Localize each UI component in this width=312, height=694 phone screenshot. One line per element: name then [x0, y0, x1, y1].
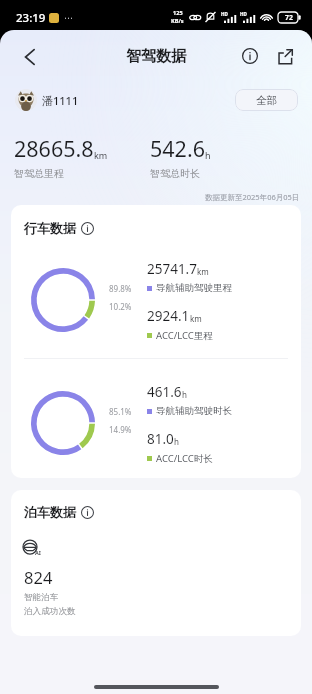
button[interactable]: Info	[80, 505, 95, 520]
staticText: 数据更新至2025年06月05日	[205, 192, 300, 202]
staticText: 智能泊车	[24, 592, 59, 603]
staticText: 89.8%	[109, 283, 132, 294]
button[interactable]: Info	[80, 221, 95, 236]
staticText: km	[197, 266, 209, 277]
staticText: 潘1111	[42, 93, 79, 108]
staticText: 泊车数据	[24, 504, 76, 520]
staticText: h	[174, 436, 179, 447]
staticText: ACC/LCC里程	[156, 329, 213, 342]
staticText: 461.6	[147, 383, 182, 401]
button[interactable]: Share	[270, 41, 300, 71]
button[interactable]: 潘1111	[15, 89, 79, 111]
staticText: km	[94, 149, 108, 161]
staticText: 智驾数据	[126, 47, 186, 66]
staticText: AI	[35, 549, 41, 556]
staticText: 81.0	[147, 430, 174, 448]
staticText: 125	[173, 9, 183, 17]
staticText: 导航辅助驾驶里程	[156, 282, 232, 294]
staticText: 542.6	[150, 134, 205, 163]
staticText: 85.1%	[109, 406, 132, 417]
staticText: 28665.8	[14, 134, 94, 163]
staticText: 导航辅助驾驶时长	[156, 405, 232, 417]
button[interactable]: Back	[13, 40, 46, 73]
staticText: 智驾总时长	[150, 167, 200, 180]
staticText: 10.2%	[109, 301, 132, 312]
staticText: 智驾总里程	[14, 167, 64, 180]
staticText: 行车数据	[24, 220, 76, 236]
staticText: ACC/LCC时长	[156, 452, 213, 465]
staticText: 72	[285, 13, 293, 22]
staticText: 泊入成功次数	[24, 606, 76, 617]
staticText: 全部	[256, 94, 277, 107]
staticText: 2924.1	[147, 307, 190, 325]
staticText: 23:19	[16, 10, 46, 26]
staticText: 824	[24, 566, 53, 588]
staticText: 25741.7	[147, 260, 197, 278]
staticText: HD	[240, 11, 247, 17]
staticText: ⋯	[64, 13, 73, 23]
staticText: KB/s	[171, 17, 184, 25]
staticText: h	[182, 389, 187, 400]
button[interactable]: 全部	[235, 89, 298, 111]
button[interactable]: Info	[235, 41, 265, 71]
staticText: HD	[221, 11, 228, 17]
staticText: h	[205, 149, 211, 161]
staticText: km	[190, 313, 202, 324]
staticText: 14.9%	[109, 424, 132, 435]
